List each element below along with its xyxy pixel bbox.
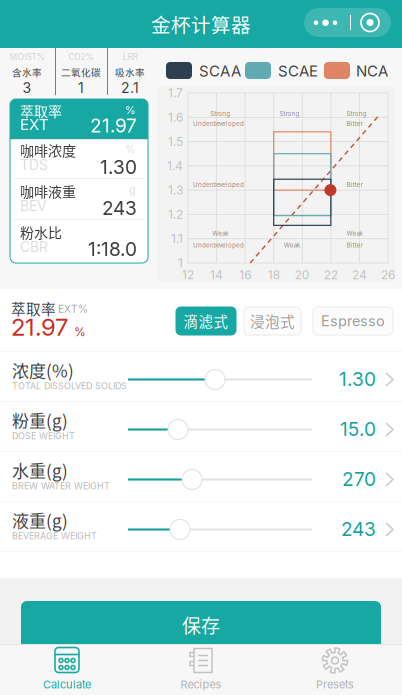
- staticText: Underdeveloped: [193, 181, 244, 188]
- staticText: 26: [381, 268, 395, 282]
- staticText: 16: [239, 268, 251, 282]
- staticText: 2.1: [121, 79, 139, 96]
- staticText: Underdeveloped: [193, 241, 244, 249]
- staticText: Espresso: [321, 312, 385, 330]
- staticText: 1.7: [168, 86, 183, 100]
- staticText: Weak: [212, 230, 228, 237]
- button[interactable]: More options: [304, 8, 391, 37]
- button[interactable]: 水重(g): [0, 452, 402, 502]
- staticText: SCAA: [199, 62, 241, 80]
- staticText: Strong: [210, 110, 230, 117]
- staticText: CBR: [20, 238, 48, 255]
- staticText: g: [129, 183, 136, 197]
- staticText: 粉重(g): [12, 408, 68, 432]
- staticText: 21.97: [11, 312, 68, 341]
- staticText: TOTAL DISSOLVED SOLIDS: [12, 381, 127, 391]
- button[interactable]: 保存: [21, 601, 381, 649]
- staticText: 金杯计算器: [151, 10, 251, 38]
- staticText: %: [125, 103, 136, 117]
- staticText: EXT%: [58, 303, 88, 315]
- staticText: Recipes: [180, 678, 221, 691]
- button[interactable]: 粉重(g): [0, 402, 402, 452]
- staticText: 1.1: [171, 231, 183, 246]
- staticText: 保存: [182, 611, 220, 639]
- staticText: Weak: [347, 230, 363, 237]
- staticText: 1:18.0: [88, 237, 137, 260]
- staticText: Bitter: [347, 181, 363, 188]
- staticText: 1.2: [168, 207, 183, 222]
- staticText: 270: [342, 467, 376, 490]
- button[interactable]: 液重(g): [0, 502, 402, 552]
- button[interactable]: 滴滤式: [176, 307, 236, 335]
- staticText: NCA: [356, 62, 388, 80]
- staticText: SCAE: [278, 62, 318, 80]
- staticText: 1: [78, 79, 84, 96]
- staticText: EXT: [20, 115, 49, 133]
- staticText: BEV: [20, 197, 47, 214]
- staticText: Bitter: [347, 120, 363, 128]
- staticText: Presets: [316, 678, 354, 691]
- staticText: 萃取率: [11, 298, 56, 319]
- staticText: 浓度(%): [12, 358, 74, 382]
- staticText: 水重(g): [12, 458, 68, 482]
- staticText: Bitter: [347, 241, 363, 249]
- staticText: 243: [102, 196, 137, 219]
- staticText: Strong: [279, 110, 299, 117]
- staticText: BEVERAGE WEIGHT: [12, 531, 97, 541]
- staticText: Strong: [347, 110, 367, 117]
- staticText: 咖啡浓度: [20, 140, 76, 160]
- staticText: 1.3: [168, 183, 183, 197]
- staticText: DOSE WEIGHT: [12, 431, 75, 441]
- staticText: CD2%: [68, 52, 93, 62]
- staticText: 18: [268, 268, 280, 282]
- staticText: LRR: [122, 52, 137, 62]
- staticText: 24: [352, 268, 367, 282]
- staticText: 15.0: [340, 417, 376, 440]
- staticText: 1: [178, 256, 183, 270]
- staticText: 3: [22, 79, 31, 96]
- staticText: MOIST%: [9, 52, 44, 62]
- staticText: %: [125, 142, 136, 156]
- staticText: 咖啡液重: [20, 181, 76, 201]
- staticText: 22: [324, 268, 338, 282]
- staticText: 液重(g): [12, 508, 68, 532]
- staticText: 含水率: [12, 65, 42, 79]
- staticText: Weak: [284, 241, 300, 249]
- staticText: 浸泡式: [250, 310, 295, 331]
- button[interactable]: Calculate: [0, 643, 134, 695]
- staticText: 吸水率: [115, 65, 145, 79]
- staticText: 1.30: [339, 367, 376, 390]
- staticText: BREW WATER WEIGHT: [12, 481, 110, 491]
- staticText: 1.30: [100, 155, 137, 178]
- staticText: 14: [210, 268, 223, 282]
- staticText: 243: [341, 517, 376, 540]
- button[interactable]: Presets: [268, 643, 402, 695]
- button[interactable]: 浸泡式: [244, 307, 301, 335]
- button[interactable]: Espresso: [313, 307, 393, 335]
- staticText: %: [74, 325, 86, 339]
- staticText: 12: [182, 268, 194, 282]
- staticText: TDS: [20, 156, 48, 173]
- staticText: 1.5: [168, 134, 183, 149]
- staticText: 粉水比: [20, 222, 62, 242]
- staticText: 20: [295, 268, 310, 282]
- staticText: 21.97: [90, 114, 137, 137]
- staticText: 萃取率: [20, 100, 62, 121]
- staticText: 1.4: [167, 159, 183, 173]
- staticText: 1.6: [168, 110, 183, 124]
- button[interactable]: 浓度(%): [0, 352, 402, 402]
- staticText: Underdeveloped: [193, 120, 244, 128]
- staticText: 滴滤式: [183, 310, 228, 331]
- staticText: Calculate: [43, 678, 91, 691]
- button[interactable]: Recipes: [134, 643, 268, 695]
- staticText: 二氧化碳: [61, 65, 101, 79]
